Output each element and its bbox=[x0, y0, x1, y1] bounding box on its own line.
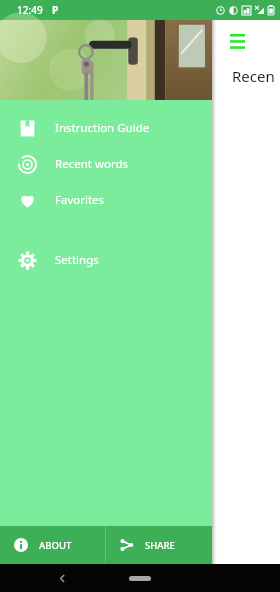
button[interactable]: ABOUT bbox=[0, 526, 105, 564]
button[interactable]: Favorites bbox=[0, 182, 212, 218]
button[interactable]: Recent words bbox=[0, 146, 212, 182]
other: Back bbox=[58, 574, 67, 583]
button[interactable]: Instruction Guide bbox=[0, 110, 212, 146]
button[interactable]: SHARE bbox=[106, 526, 212, 564]
staticText: Settings bbox=[55, 252, 99, 268]
staticText: Recent words bbox=[55, 156, 128, 172]
staticText: Recent words bbox=[232, 66, 280, 86]
staticText: ABOUT bbox=[39, 539, 72, 552]
other: Home bbox=[129, 576, 151, 581]
staticText: Instruction Guide bbox=[55, 120, 150, 136]
staticText: SHARE bbox=[145, 539, 175, 552]
staticText: Favorites bbox=[55, 192, 105, 208]
button[interactable]: Settings bbox=[0, 242, 212, 278]
staticText: P bbox=[52, 3, 59, 17]
button[interactable]: Open navigation drawer bbox=[224, 28, 250, 54]
staticText: 12:49 bbox=[17, 3, 43, 17]
